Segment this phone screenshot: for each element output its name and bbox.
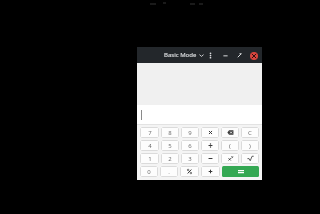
button[interactable]: 8 (161, 127, 179, 138)
staticText: . (168, 168, 170, 176)
staticText: 2 (168, 155, 172, 163)
button[interactable]: ) (241, 140, 259, 151)
button[interactable]: 7 (140, 127, 159, 138)
button[interactable]: Percent (180, 166, 199, 177)
button[interactable]: 2 (161, 153, 179, 164)
button[interactable]: Close (248, 50, 259, 61)
staticText: ) (249, 142, 251, 150)
button[interactable]: Power (221, 153, 239, 164)
button[interactable]: 3 (181, 153, 199, 164)
staticText: 1 (148, 155, 152, 163)
button[interactable]: Minus (201, 153, 219, 164)
staticText: 9 (188, 129, 192, 137)
button[interactable]: Equals (222, 166, 259, 177)
button[interactable] (137, 105, 262, 124)
button[interactable]: 0 (140, 166, 158, 177)
button[interactable]: 6 (181, 140, 199, 151)
staticText: 8 (168, 129, 172, 137)
button[interactable]: . (160, 166, 178, 177)
button[interactable]: 4 (140, 140, 159, 151)
button[interactable]: C (241, 127, 259, 138)
button[interactable]: Square root (241, 153, 259, 164)
button[interactable]: Menu (205, 50, 216, 61)
staticText: 7 (148, 129, 152, 137)
button[interactable]: 1 (140, 153, 159, 164)
staticText: 3 (188, 155, 192, 163)
button[interactable]: 5 (161, 140, 179, 151)
button[interactable]: Multiply (201, 127, 219, 138)
button[interactable]: Backspace (221, 127, 239, 138)
staticText: 6 (188, 142, 192, 150)
button[interactable]: ( (221, 140, 239, 151)
staticText: 4 (148, 142, 152, 150)
button[interactable]: 9 (181, 127, 199, 138)
staticText: Basic Mode (164, 51, 197, 59)
button[interactable]: Plus (201, 166, 220, 177)
staticText: C (248, 129, 252, 137)
button[interactable]: Divide (201, 140, 219, 151)
staticText: ( (229, 142, 231, 150)
button[interactable]: Basic Mode (162, 50, 206, 60)
staticText: 5 (168, 142, 172, 150)
staticText: 0 (147, 168, 151, 176)
button[interactable]: Minimize (220, 50, 231, 61)
button[interactable]: Maximize (234, 50, 245, 61)
